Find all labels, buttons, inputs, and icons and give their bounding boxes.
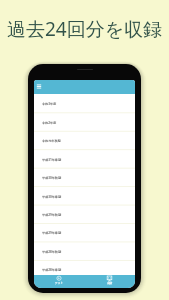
button[interactable]: 令和元年秋期 [34, 131, 135, 149]
button[interactable]: 平成29年秋期 [34, 205, 135, 223]
staticText: 平成29年秋期 [42, 213, 62, 217]
staticText: 令和元年秋期 [42, 139, 61, 143]
staticText: 平成30年春期 [42, 195, 62, 199]
button[interactable]: 平成28年秋期 [34, 242, 135, 260]
button[interactable]: 平成30年秋期 [34, 168, 135, 186]
button[interactable]: 平成29年春期 [34, 223, 135, 241]
button[interactable]: 平成31年春期 [34, 150, 135, 168]
button[interactable]: 令和2年度 [34, 113, 135, 131]
button[interactable]: 令和3年度 [34, 94, 135, 112]
button[interactable]: テスト [34, 275, 84, 288]
button[interactable]: 平成30年春期 [34, 187, 135, 205]
staticText: 平成31年春期 [42, 158, 62, 162]
staticText: 令和2年度 [42, 121, 57, 125]
staticText: テスト [55, 281, 63, 284]
button[interactable]: Menu [35, 82, 43, 91]
staticText: 平成28年春期 [42, 268, 62, 272]
staticText: 平成29年春期 [42, 231, 62, 235]
staticText: 平成28年秋期 [42, 250, 62, 254]
staticText: 過去24回分を収録 [0, 16, 169, 42]
staticText: 令和3年度 [42, 102, 57, 106]
button[interactable]: 平成27年秋期 [34, 279, 135, 288]
button[interactable]: 成績 [84, 275, 135, 288]
staticText: 平成30年秋期 [42, 176, 62, 180]
button[interactable]: 平成28年春期 [34, 260, 135, 278]
staticText: 成績 [107, 281, 113, 284]
